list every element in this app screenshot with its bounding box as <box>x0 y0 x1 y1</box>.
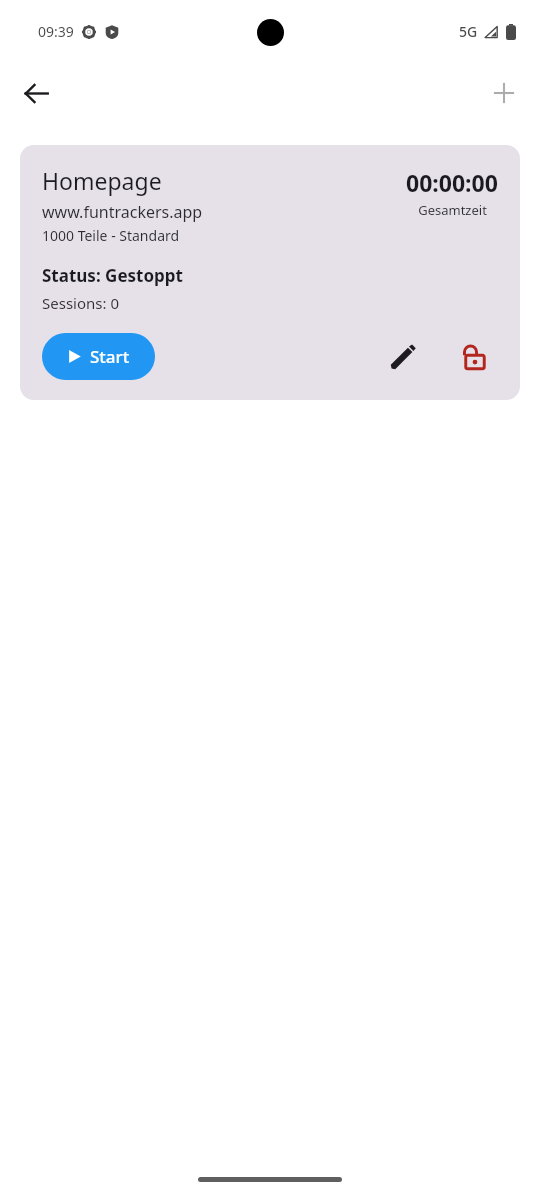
button[interactable]: Back <box>12 69 60 117</box>
staticText: 09:39 <box>38 22 74 41</box>
staticText: Homepage <box>42 165 162 196</box>
staticText: Sessions: 0 <box>42 293 119 313</box>
button[interactable]: Homepage <box>20 145 520 400</box>
button[interactable]: Edit <box>380 334 426 380</box>
staticText: www.funtrackers.app <box>42 201 203 223</box>
button[interactable]: Start <box>42 333 155 380</box>
staticText: Status: Gestoppt <box>42 264 183 287</box>
staticText: Gesamtzeit <box>418 201 487 219</box>
staticText: 00:00:00 <box>406 167 498 198</box>
staticText: Start <box>90 345 130 368</box>
staticText: 5G <box>459 22 478 41</box>
button[interactable]: Add <box>480 69 528 117</box>
staticText: 1000 Teile - Standard <box>42 226 180 245</box>
button[interactable]: Unlock <box>452 334 498 380</box>
